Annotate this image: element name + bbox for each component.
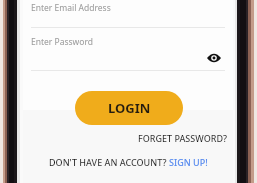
button[interactable]: SIGN UP!: [169, 156, 208, 168]
button[interactable]: FORGET PASSWORD?: [127, 130, 227, 146]
staticText: FORGET PASSWORD?: [137, 132, 227, 144]
staticText: SIGN UP!: [169, 156, 208, 168]
button[interactable]: Enter Password: [23, 34, 203, 70]
button[interactable]: Show password: [204, 48, 224, 68]
staticText: Enter Email Address: [31, 2, 111, 14]
staticText: LOGIN: [108, 99, 151, 117]
button[interactable]: LOGIN: [75, 91, 183, 125]
staticText: Enter Password: [31, 36, 94, 48]
staticText: DON'T HAVE AN ACCOUNT?: [49, 156, 169, 168]
button[interactable]: Enter Email Address: [23, 0, 233, 28]
